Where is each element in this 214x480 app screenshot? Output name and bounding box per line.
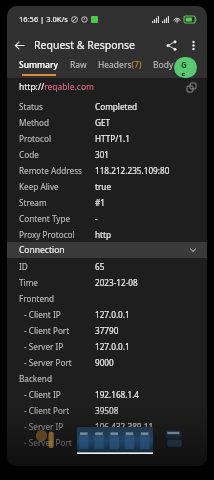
button[interactable]: Share bbox=[159, 33, 183, 57]
staticText: Raw bbox=[70, 59, 87, 71]
button[interactable]: Frontend bbox=[7, 290, 207, 306]
button[interactable]: Summary bbox=[19, 59, 59, 76]
button[interactable]: - Server Port bbox=[7, 354, 207, 370]
staticText: Stream bbox=[19, 197, 95, 208]
button[interactable]: Copy URL bbox=[183, 79, 199, 95]
button[interactable]: Remote Address bbox=[7, 162, 207, 178]
button[interactable]: Screenshot thumbnail bbox=[77, 427, 153, 454]
button[interactable]: Protocol bbox=[7, 130, 207, 146]
button[interactable]: More options bbox=[183, 33, 203, 57]
staticText: 39508 bbox=[95, 405, 119, 416]
staticText: Remote Address bbox=[19, 165, 95, 176]
staticText: 2023-12-08 16:54:50.361204 bbox=[95, 277, 201, 288]
staticText: - Server IP bbox=[24, 341, 95, 352]
staticText: Backend bbox=[19, 373, 52, 384]
staticText: #1 bbox=[95, 197, 105, 208]
staticText: - bbox=[95, 213, 98, 224]
staticText: Method bbox=[19, 117, 95, 128]
staticText: true bbox=[95, 181, 112, 192]
button[interactable]: Backend bbox=[7, 370, 207, 386]
button[interactable]: - Client IP bbox=[7, 386, 207, 402]
staticText: - Client IP bbox=[24, 389, 95, 400]
staticText: 37790 bbox=[95, 325, 119, 336]
staticText: Connection bbox=[19, 244, 65, 256]
button[interactable]: - Client Port bbox=[7, 402, 207, 418]
staticText: 16:56 | 3.0K/s bbox=[19, 14, 68, 24]
staticText: - Client Port bbox=[24, 325, 95, 336]
staticText: GET bbox=[95, 117, 111, 128]
button[interactable]: - Server IP bbox=[7, 418, 207, 434]
button[interactable]: - Client IP bbox=[7, 306, 207, 322]
button[interactable]: http://reqable.com bbox=[7, 78, 207, 96]
staticText: ID bbox=[19, 261, 95, 272]
button[interactable]: Method bbox=[7, 114, 207, 130]
staticText: 106.432.389.11 bbox=[95, 421, 154, 432]
staticText: - Client IP bbox=[24, 309, 95, 320]
button[interactable]: - Client Port bbox=[7, 322, 207, 338]
staticText: Proxy Protocol bbox=[19, 229, 95, 240]
button[interactable]: Raw bbox=[70, 59, 87, 76]
staticText: http bbox=[95, 229, 112, 240]
button[interactable]: Keep Alive bbox=[7, 178, 207, 194]
button[interactable]: Connection bbox=[7, 242, 207, 258]
staticText: Keep Alive bbox=[19, 181, 95, 192]
button[interactable]: Time bbox=[7, 274, 207, 290]
button[interactable]: GET bbox=[174, 57, 197, 78]
button[interactable]: Body bbox=[153, 59, 174, 76]
staticText: - Server Port bbox=[24, 357, 95, 368]
button[interactable]: Headers(7) bbox=[98, 59, 142, 76]
staticText: - Server Port bbox=[24, 437, 95, 448]
staticText: Request & Response bbox=[34, 38, 136, 52]
staticText: 44.83.449.119 bbox=[95, 437, 149, 448]
staticText: Status bbox=[19, 101, 95, 112]
staticText: - Client Port bbox=[24, 405, 95, 416]
button[interactable]: - Server Port bbox=[7, 434, 207, 450]
staticText: Content Type bbox=[19, 213, 95, 224]
staticText: 192.168.1.4 bbox=[95, 389, 140, 400]
button[interactable]: ID bbox=[7, 258, 207, 274]
staticText: Protocol bbox=[19, 133, 95, 144]
staticText: 127.0.0.1 bbox=[95, 309, 130, 320]
staticText: Code bbox=[19, 149, 95, 160]
staticText: 65 bbox=[95, 261, 105, 272]
staticText: 127.0.0.1 bbox=[95, 341, 130, 352]
button[interactable]: - Server IP bbox=[7, 338, 207, 354]
staticText: Body bbox=[153, 59, 174, 71]
staticText: Time bbox=[19, 277, 95, 288]
button[interactable]: Status bbox=[7, 98, 207, 114]
staticText: 301 bbox=[95, 149, 110, 160]
staticText: Completed bbox=[95, 101, 138, 112]
button[interactable]: Proxy Protocol bbox=[7, 226, 207, 242]
staticText: Frontend bbox=[19, 293, 55, 304]
button[interactable]: Stream bbox=[7, 194, 207, 210]
staticText: GET bbox=[181, 59, 190, 76]
staticText: http://reqable.com bbox=[19, 81, 95, 93]
button[interactable]: Screenshot thumbnail bbox=[163, 426, 187, 450]
staticText: HTTP/1.1 bbox=[95, 133, 130, 144]
staticText: Summary bbox=[19, 59, 59, 71]
button[interactable]: Content Type bbox=[7, 210, 207, 226]
staticText: 9000 bbox=[95, 357, 114, 368]
staticText: Headers(7) bbox=[98, 59, 142, 71]
staticText: - Server IP bbox=[24, 421, 95, 432]
button[interactable]: Code bbox=[7, 146, 207, 162]
button[interactable]: Back bbox=[7, 33, 31, 57]
staticText: 118.212.235.109:80 bbox=[95, 165, 170, 176]
